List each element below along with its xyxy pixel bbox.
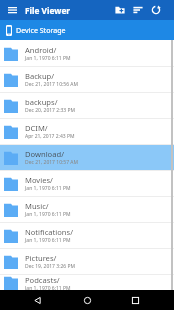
- staticText: Movies/: [25, 175, 53, 185]
- staticText: Download/: [25, 149, 64, 159]
- button[interactable]: Open navigation drawer: [0, 0, 25, 20]
- button[interactable]: Podcasts/: [0, 275, 174, 290]
- button[interactable]: Music/: [0, 197, 174, 222]
- staticText: Notifications/: [25, 227, 73, 237]
- staticText: Pictures/: [25, 253, 57, 263]
- staticText: Jan 1, 1970 6:11 PM: [25, 185, 71, 192]
- staticText: Jan 1, 1970 6:11 PM: [25, 237, 71, 244]
- button[interactable]: Notifications/: [0, 223, 174, 248]
- staticText: Dec 19, 2017 3:26 PM: [25, 263, 76, 270]
- staticText: Podcasts/: [25, 275, 60, 285]
- button[interactable]: Create new folder: [111, 0, 129, 20]
- staticText: Music/: [25, 201, 49, 211]
- button[interactable]: Movies/: [0, 171, 174, 196]
- button[interactable]: Home: [78, 290, 96, 310]
- button[interactable]: Pictures/: [0, 249, 174, 274]
- button[interactable]: backups/: [0, 93, 174, 118]
- staticText: Dec 21, 2017 10:56 AM: [25, 81, 79, 88]
- button[interactable]: Android/: [0, 41, 174, 66]
- staticText: Device Storage: [16, 25, 66, 35]
- button[interactable]: Back: [28, 290, 46, 310]
- staticText: Jan 1, 1970 6:11 PM: [25, 55, 71, 62]
- staticText: File Viewer: [25, 5, 71, 16]
- staticText: Jan 1, 1970 6:11 PM: [25, 211, 71, 218]
- staticText: Backup/: [25, 71, 55, 81]
- staticText: Dec 20, 2017 2:33 PM: [25, 107, 76, 114]
- button[interactable]: Backup/: [0, 67, 174, 92]
- button[interactable]: Download/: [0, 145, 174, 170]
- staticText: Apr 21, 2017 2:43 PM: [25, 133, 75, 140]
- staticText: backups/: [25, 97, 58, 107]
- button[interactable]: Device Storage: [0, 20, 174, 40]
- button[interactable]: Sort: [129, 0, 147, 20]
- staticText: DCIM/: [25, 123, 48, 133]
- staticText: Android/: [25, 45, 57, 55]
- button[interactable]: Recent apps: [126, 290, 144, 310]
- button[interactable]: DCIM/: [0, 119, 174, 144]
- staticText: Dec 21, 2017 10:57 AM: [25, 159, 79, 166]
- button[interactable]: Refresh: [147, 0, 165, 20]
- staticText: Jan 1, 1970 6:11 PM: [25, 285, 71, 290]
